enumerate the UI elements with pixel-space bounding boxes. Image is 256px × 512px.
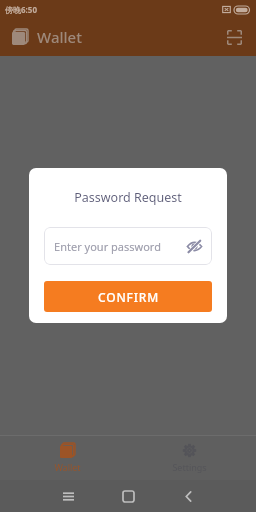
staticText: Wallet	[37, 27, 82, 47]
button[interactable]: Home	[111, 480, 145, 512]
staticText: Enter your password	[54, 239, 161, 254]
button[interactable]: Recents	[51, 480, 85, 512]
button[interactable]: Back	[171, 480, 205, 512]
staticText: Password Request	[74, 189, 182, 206]
button[interactable]: Scan	[221, 24, 247, 50]
button[interactable]: Enter your password	[44, 227, 212, 265]
button[interactable]: Show password	[183, 235, 205, 257]
staticText: Wallet	[54, 461, 81, 473]
staticText: CONFIRM	[98, 289, 159, 305]
button[interactable]: Wallet	[12, 438, 122, 478]
staticText: 傍晚6:50	[5, 4, 37, 15]
button[interactable]: CONFIRM	[44, 281, 212, 312]
